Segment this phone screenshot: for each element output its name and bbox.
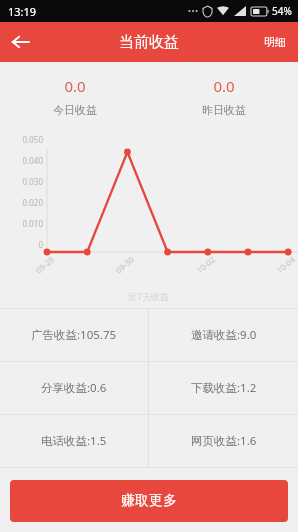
- button[interactable]: 广告收益:105.75: [0, 309, 148, 361]
- button[interactable]: 明细: [252, 25, 298, 59]
- button[interactable]: Back: [0, 22, 40, 62]
- button[interactable]: 赚取更多: [10, 480, 288, 522]
- button[interactable]: 电话收益:1.5: [0, 415, 148, 467]
- staticText: 近7天收益: [128, 290, 170, 302]
- staticText: 电话收益:1.5: [41, 433, 107, 449]
- staticText: 0.030: [22, 176, 43, 187]
- staticText: 广告收益:105.75: [31, 327, 117, 343]
- staticText: 0.010: [22, 218, 43, 229]
- staticText: 下载收益:1.2: [191, 380, 257, 396]
- staticText: 分享收益:0.6: [41, 380, 107, 396]
- staticText: 0: [38, 239, 43, 250]
- button[interactable]: 下载收益:1.2: [149, 362, 298, 414]
- button[interactable]: 邀请收益:9.0: [149, 309, 298, 361]
- staticText: 13:19: [8, 4, 37, 19]
- staticText: 0.0: [213, 76, 235, 96]
- staticText: 0.0: [64, 76, 86, 96]
- staticText: 0.020: [22, 197, 43, 208]
- staticText: 昨日收益: [202, 103, 246, 117]
- staticText: 赚取更多: [121, 492, 177, 510]
- staticText: 邀请收益:9.0: [191, 327, 257, 343]
- staticText: 09-28: [33, 253, 56, 275]
- button[interactable]: 网页收益:1.6: [149, 415, 298, 467]
- staticText: 10-02: [194, 253, 217, 275]
- staticText: 0.040: [22, 155, 43, 166]
- button[interactable]: 分享收益:0.6: [0, 362, 148, 414]
- staticText: 09-30: [113, 253, 136, 275]
- staticText: 网页收益:1.6: [191, 433, 257, 449]
- button[interactable]: 0.0: [149, 62, 298, 117]
- staticText: 明细: [264, 35, 286, 49]
- staticText: 54%: [272, 4, 292, 18]
- staticText: 今日收益: [53, 103, 97, 117]
- staticText: 0.050: [22, 134, 43, 145]
- staticText: 10-04: [274, 253, 297, 275]
- button[interactable]: 0.0: [0, 62, 149, 117]
- staticText: 当前收益: [119, 33, 179, 52]
